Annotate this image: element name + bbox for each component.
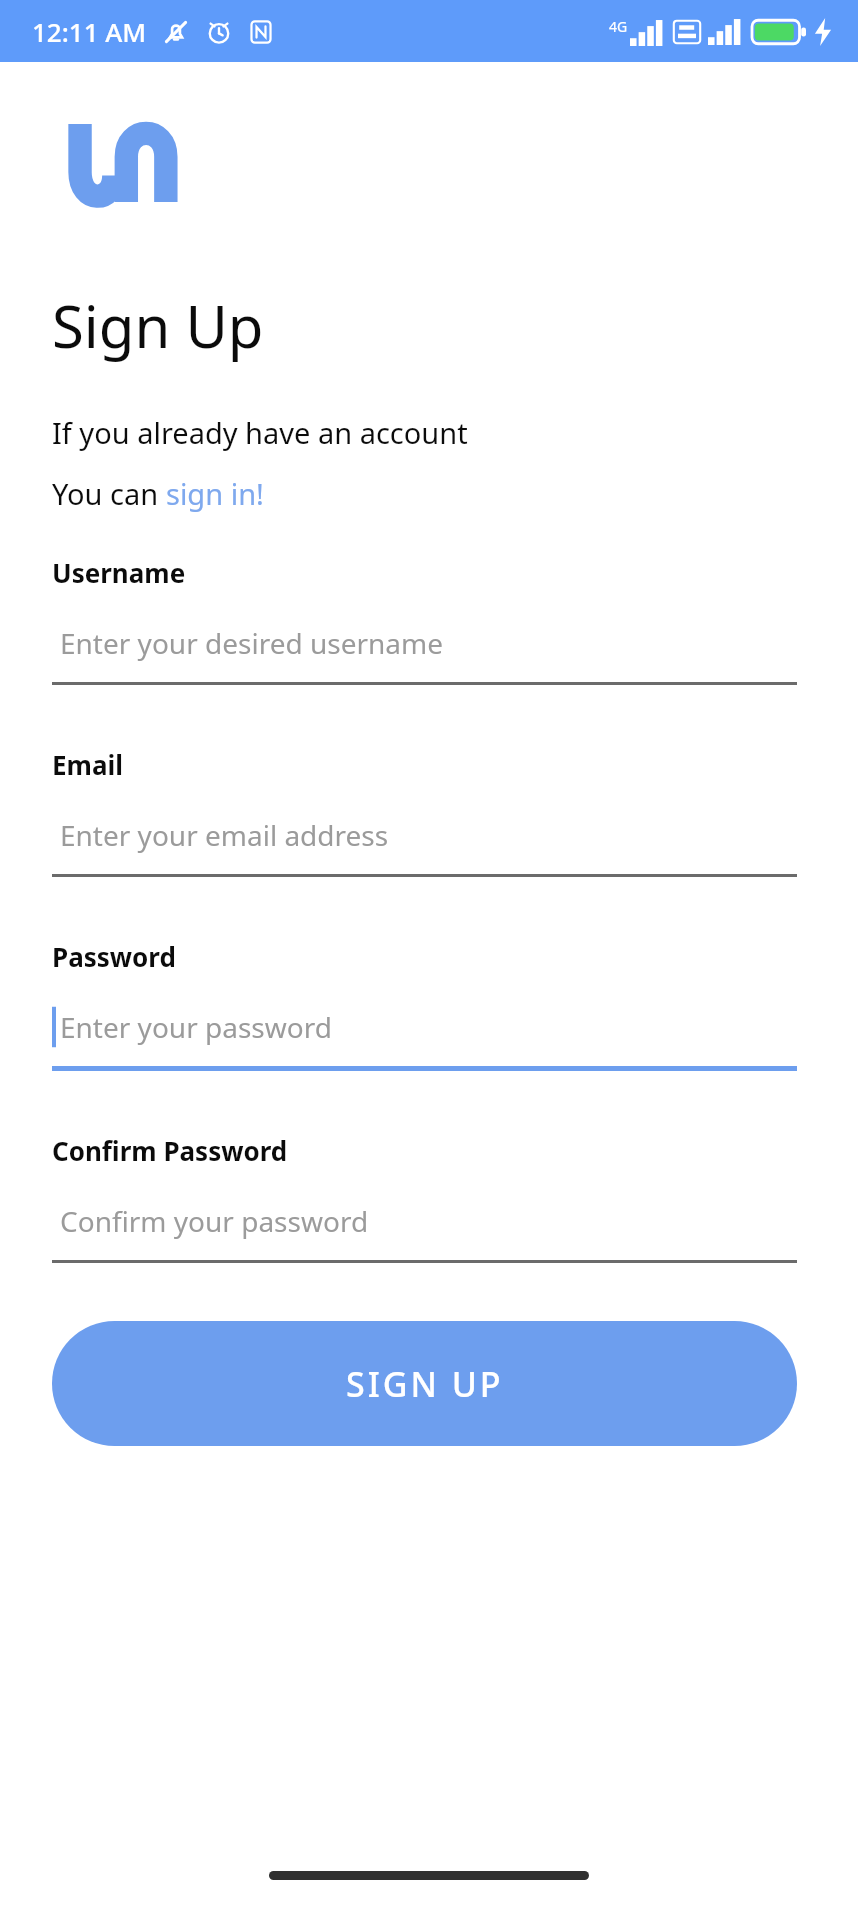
staticText: Password <box>52 939 176 974</box>
staticText: Enter your password <box>60 1008 332 1046</box>
button[interactable]: sign in! <box>166 474 264 513</box>
staticText: If you already have an account <box>52 413 468 452</box>
button[interactable]: Confirm Password <box>52 1133 797 1263</box>
staticText: Enter your email address <box>60 816 389 854</box>
staticText: You can <box>52 474 166 513</box>
staticText: 12:11 AM <box>32 14 147 49</box>
staticText: Enter your desired username <box>60 624 443 662</box>
button[interactable]: Email <box>52 747 797 877</box>
staticText: Confirm your password <box>60 1202 369 1240</box>
button[interactable]: Password <box>52 939 797 1071</box>
button[interactable]: SIGN UP <box>52 1321 797 1446</box>
staticText: Sign Up <box>52 286 264 365</box>
staticText: 4G <box>609 17 628 36</box>
staticText: Confirm Password <box>52 1133 288 1168</box>
staticText: SIGN UP <box>346 1361 504 1407</box>
staticText: Email <box>52 747 124 782</box>
button[interactable]: Username <box>52 555 797 685</box>
staticText: sign in! <box>166 474 264 513</box>
staticText: Username <box>52 555 186 590</box>
